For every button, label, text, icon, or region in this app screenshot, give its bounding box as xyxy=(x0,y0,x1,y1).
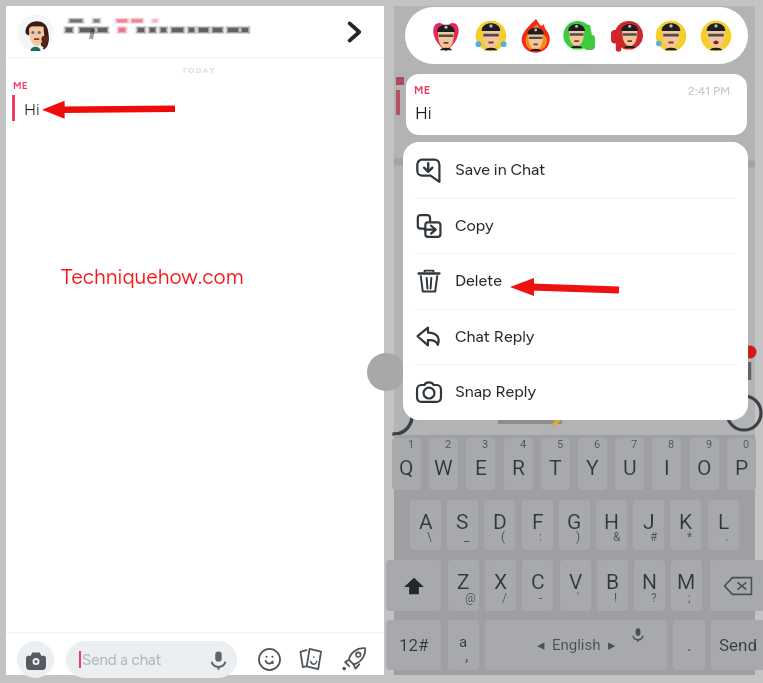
staticText: S xyxy=(456,510,469,535)
button[interactable]: a xyxy=(448,620,479,670)
button[interactable]: N xyxy=(634,560,665,611)
staticText: Send xyxy=(719,635,758,655)
button[interactable]: back xyxy=(710,560,763,611)
button[interactable]: ME xyxy=(406,74,747,135)
button[interactable]: S xyxy=(447,500,478,550)
staticText: T xyxy=(549,456,562,481)
staticText: 5 xyxy=(557,438,564,451)
staticText: D xyxy=(493,510,507,535)
button[interactable]: H xyxy=(596,500,627,550)
button[interactable]: Reaction 6 xyxy=(654,19,688,53)
staticText: Save in Chat xyxy=(455,160,546,179)
button[interactable]: J xyxy=(633,500,664,550)
staticText: J xyxy=(643,510,655,535)
staticText: ME xyxy=(13,79,28,91)
staticText: X xyxy=(494,570,508,595)
button[interactable]: B xyxy=(597,560,628,611)
staticText: 7 xyxy=(631,438,638,451)
staticText: Techniquehow.com xyxy=(61,264,244,289)
button[interactable]: L xyxy=(708,500,739,550)
button[interactable]: X xyxy=(485,560,516,611)
button[interactable]: Reaction 1 xyxy=(405,7,748,64)
staticText: M xyxy=(677,570,696,595)
staticText: Z xyxy=(457,570,470,595)
staticText: I xyxy=(664,456,670,481)
staticText: # xyxy=(650,530,658,544)
button[interactable]: Chat Reply xyxy=(403,309,748,365)
button[interactable]: Voice note xyxy=(205,647,231,673)
button[interactable]: Open conversation xyxy=(333,11,375,53)
staticText: . xyxy=(687,635,692,655)
staticText: 0 xyxy=(743,438,750,451)
button[interactable]: W xyxy=(429,438,458,490)
button[interactable]: Reaction 3 xyxy=(519,19,553,53)
button[interactable]: V xyxy=(560,560,591,611)
staticText: ' xyxy=(577,591,580,605)
button[interactable]: Y xyxy=(578,438,607,490)
button[interactable]: Snap Reply xyxy=(403,364,748,420)
button[interactable]: F xyxy=(522,500,553,550)
staticText: * xyxy=(687,530,693,544)
button[interactable]: P xyxy=(727,438,756,490)
button[interactable]: Reaction 7 xyxy=(699,19,733,53)
button[interactable]: T xyxy=(541,438,570,490)
button[interactable]: C xyxy=(522,560,553,611)
staticText: G xyxy=(567,510,582,535)
staticText: Delete xyxy=(455,271,503,290)
button[interactable]: M xyxy=(671,560,702,611)
button[interactable]: Z xyxy=(448,560,479,611)
staticText: : xyxy=(539,530,542,544)
button[interactable]: Reaction 1 xyxy=(429,19,463,53)
staticText: ! xyxy=(614,591,618,605)
button[interactable]: Copy xyxy=(403,198,748,254)
button[interactable]: Stickers xyxy=(257,647,281,671)
staticText: - xyxy=(539,591,543,605)
button[interactable]: Delete xyxy=(403,253,748,309)
button[interactable]: K xyxy=(670,500,701,550)
staticText: N xyxy=(642,570,657,595)
button[interactable]: D xyxy=(484,500,515,550)
staticText: K xyxy=(679,510,693,535)
staticText: 2 xyxy=(445,438,452,451)
staticText: 2:41 PM xyxy=(688,84,731,98)
button[interactable]: Save in Chat xyxy=(403,142,748,198)
button[interactable]: Rocket xyxy=(342,647,366,671)
button[interactable]: U xyxy=(615,438,644,490)
button[interactable]: Camera xyxy=(17,641,54,678)
button[interactable]: O xyxy=(690,438,719,490)
staticText: 3 xyxy=(482,438,489,451)
staticText: , xyxy=(465,645,469,665)
button[interactable]: G xyxy=(559,500,590,550)
staticText: ( xyxy=(501,530,506,544)
staticText: W xyxy=(434,456,453,481)
staticText: U xyxy=(623,456,637,481)
button[interactable]: I xyxy=(652,438,681,490)
staticText: ? xyxy=(651,591,657,605)
staticText: ◂ English ▸ xyxy=(537,636,616,654)
button[interactable]: A xyxy=(410,500,441,550)
button[interactable]: Cameos xyxy=(299,647,323,671)
button[interactable]: Send a chat xyxy=(66,641,237,678)
staticText: F xyxy=(532,510,544,535)
button[interactable]: Reaction 4 xyxy=(564,19,598,53)
staticText: 4 xyxy=(520,438,527,451)
button[interactable]: Q xyxy=(392,438,421,490)
staticText: / xyxy=(502,591,507,605)
staticText: Q xyxy=(399,456,414,481)
button[interactable]: space xyxy=(485,620,667,670)
staticText: Y xyxy=(586,456,599,481)
staticText: 6 xyxy=(594,438,601,451)
button[interactable]: Open conversation xyxy=(6,6,384,58)
button[interactable]: . xyxy=(673,620,705,670)
button[interactable]: 12# xyxy=(386,620,441,670)
staticText: Chat Reply xyxy=(455,327,535,346)
staticText: @ xyxy=(465,591,476,605)
button[interactable]: Reaction 5 xyxy=(609,19,643,53)
staticText: O xyxy=(697,456,712,481)
button[interactable]: Send xyxy=(711,620,763,670)
button[interactable]: R xyxy=(504,438,533,490)
button[interactable]: Reaction 2 xyxy=(474,19,508,53)
button[interactable]: shift xyxy=(386,560,441,611)
staticText: Hi xyxy=(415,103,432,123)
button[interactable]: E xyxy=(466,438,495,490)
